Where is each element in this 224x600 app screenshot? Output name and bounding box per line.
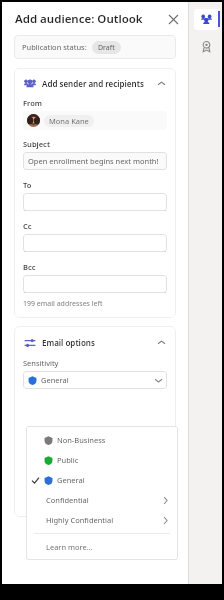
button[interactable]: Highly Confidential — [26, 510, 178, 530]
button[interactable]: Add sender and recipients — [23, 75, 167, 91]
staticText: Non-Business — [57, 435, 106, 445]
staticText: Confidential — [46, 495, 89, 505]
button[interactable]: Public — [26, 450, 178, 470]
other: Collapse — [155, 77, 167, 89]
staticText: Open enrollment begins next month! — [28, 156, 159, 166]
button[interactable]: Badge — [195, 35, 217, 57]
button[interactable]: Learn more... — [26, 537, 178, 556]
staticText: From — [23, 98, 42, 108]
button[interactable]: General — [23, 371, 167, 389]
button[interactable]: Open enrollment begins next month! — [23, 152, 167, 170]
other: Collapse — [155, 336, 167, 348]
staticText: Subject — [23, 139, 50, 149]
button[interactable]: Mona Kane — [23, 111, 167, 130]
staticText: Sensitivity — [23, 358, 59, 368]
staticText: Publication status: — [22, 42, 87, 52]
staticText: Draft — [98, 43, 115, 53]
staticText: To — [23, 180, 32, 190]
staticText: Add sender and recipients — [42, 78, 144, 89]
button[interactable]: General — [26, 470, 178, 490]
button[interactable] — [23, 234, 167, 252]
button[interactable]: Audience — [191, 8, 220, 30]
button[interactable] — [23, 193, 167, 211]
staticText: 199 email addresses left — [23, 299, 103, 309]
staticText: Highly Confidential — [46, 515, 114, 525]
staticText: General — [57, 475, 85, 485]
staticText: Public — [57, 455, 79, 465]
staticText: Learn more... — [46, 542, 93, 552]
staticText: General — [41, 375, 69, 385]
button[interactable]: Publication status: — [14, 35, 176, 59]
staticText: Cc — [23, 221, 32, 231]
staticText: Add audience: Outlook — [15, 11, 143, 27]
button[interactable]: Email options — [23, 334, 167, 350]
staticText: Email options — [42, 337, 95, 348]
button[interactable] — [23, 275, 167, 293]
staticText: Mona Kane — [49, 116, 89, 126]
button[interactable]: Confidential — [26, 490, 178, 510]
button[interactable]: Non-Business — [26, 430, 178, 450]
staticText: Bcc — [23, 262, 36, 272]
button[interactable]: Close — [164, 10, 182, 28]
